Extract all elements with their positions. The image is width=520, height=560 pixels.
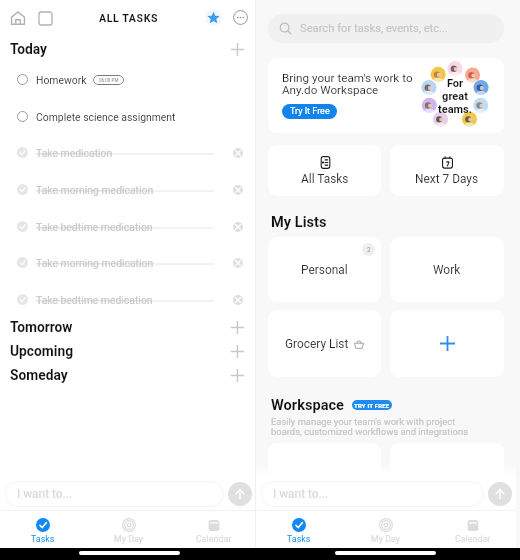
button[interactable]: I want to... xyxy=(5,481,224,507)
button[interactable]: Remove task xyxy=(233,185,243,195)
button[interactable]: Tasks xyxy=(256,511,342,548)
button[interactable]: Calendar xyxy=(171,511,256,548)
staticText: I want to... xyxy=(17,487,72,501)
other: Add list xyxy=(440,336,455,351)
button[interactable]: Upcoming xyxy=(10,339,244,363)
staticText: Take morning medication xyxy=(36,257,154,269)
staticText: Someday xyxy=(10,367,68,383)
staticText: Homework xyxy=(36,74,87,86)
button[interactable]: Take morning medication xyxy=(17,244,243,281)
staticText: My Day xyxy=(371,534,400,544)
staticText: Take medication xyxy=(36,147,113,159)
staticText: Calendar xyxy=(196,534,232,544)
button[interactable]: More options xyxy=(233,10,248,25)
button[interactable]: My Day xyxy=(86,511,171,548)
button[interactable]: Remove task xyxy=(233,148,243,158)
staticText: My Lists xyxy=(271,213,327,230)
staticText: Today xyxy=(10,41,47,57)
staticText: Try It Free xyxy=(290,106,330,117)
button[interactable]: Remove task xyxy=(233,258,243,268)
staticText: My Day xyxy=(114,534,143,544)
staticText: Workspace xyxy=(271,396,344,413)
staticText: Tomorrow xyxy=(10,319,73,335)
staticText: 06:00 PM xyxy=(99,78,119,83)
button[interactable]: Send xyxy=(488,482,512,506)
staticText: Next 7 Days xyxy=(415,172,479,186)
staticText: Take bedtime medication xyxy=(36,294,153,306)
button[interactable]: Search for tasks, events, etc... xyxy=(268,14,504,43)
button[interactable]: All Tasks xyxy=(268,145,381,196)
staticText: ALL TASKS xyxy=(99,12,159,24)
staticText: Personal xyxy=(301,263,348,277)
staticText: Search for tasks, events, etc... xyxy=(300,22,448,35)
button[interactable]: Take bedtime medication xyxy=(17,281,243,318)
staticText: Calendar xyxy=(455,534,491,544)
staticText: 2 xyxy=(367,246,371,254)
button[interactable]: My Day xyxy=(342,511,429,548)
staticText: All Tasks xyxy=(301,172,349,186)
staticText: Complete science assignment xyxy=(36,111,176,123)
staticText: Upcoming xyxy=(10,343,74,359)
button[interactable]: Home xyxy=(7,7,29,29)
button[interactable]: Recent apps xyxy=(34,7,56,29)
button[interactable]: Next 7 Days xyxy=(390,145,504,196)
button[interactable]: Starred xyxy=(205,9,222,26)
staticText: For great teams. xyxy=(438,77,472,116)
button[interactable]: Tasks xyxy=(0,511,86,548)
button[interactable]: Add list xyxy=(390,310,504,377)
button[interactable]: Try It Free xyxy=(282,104,337,119)
staticText: Take morning medication xyxy=(36,184,154,196)
staticText: Bring your team's work to Any.do Workspa… xyxy=(282,71,413,97)
button[interactable]: Remove task xyxy=(233,222,243,232)
staticText: Tasks xyxy=(287,534,311,544)
button[interactable]: I want to... xyxy=(261,481,484,507)
button[interactable]: Take bedtime medication xyxy=(17,208,243,245)
button[interactable]: Personal xyxy=(268,237,381,302)
button[interactable]: Bring your team's work to Any.do Workspa… xyxy=(268,58,504,133)
staticText: Easily manage your team's work with proj… xyxy=(271,416,468,438)
button[interactable]: Grocery List xyxy=(268,310,381,377)
staticText: TRY IT FREE xyxy=(354,402,390,409)
button[interactable]: Take morning medication xyxy=(17,171,243,208)
button[interactable]: Calendar xyxy=(429,511,516,548)
button[interactable]: Take medication xyxy=(17,134,243,171)
staticText: Take bedtime medication xyxy=(36,221,153,233)
staticText: Work xyxy=(433,263,461,277)
button[interactable]: Homework xyxy=(17,61,242,98)
staticText: Grocery List xyxy=(285,337,349,351)
button[interactable]: Complete science assignment xyxy=(17,98,242,135)
staticText: Tasks xyxy=(31,534,55,544)
button[interactable]: Someday xyxy=(10,363,244,387)
button[interactable]: Work xyxy=(390,237,504,302)
staticText: I want to... xyxy=(273,487,328,501)
button[interactable]: Send xyxy=(228,482,252,506)
button[interactable]: Today xyxy=(10,36,244,62)
button[interactable]: Remove task xyxy=(233,295,243,305)
button[interactable]: Tomorrow xyxy=(10,315,244,339)
